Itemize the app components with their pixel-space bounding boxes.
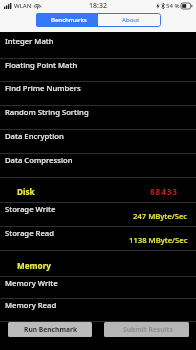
staticText: Random String Sorting [5,107,89,117]
staticText: Memory [17,260,52,271]
staticText: Storage Read [5,228,54,238]
staticText: WLAN [14,2,32,10]
button[interactable]: Storage Write [0,203,196,227]
staticText: 54 % [166,2,180,10]
button[interactable]: Data Encryption [0,130,196,154]
button[interactable]: Memory Read [0,299,196,322]
button[interactable]: Data Compression [0,154,196,178]
button[interactable]: Find Prime Numbers [0,82,196,106]
staticText: 1138 MByte/Sec [129,235,188,245]
staticText: Benchmarks [51,16,87,24]
staticText: Submit Results [123,325,173,334]
staticText: Memory Read [5,300,57,310]
button[interactable]: Storage Read [0,227,196,251]
staticText: Memory Write [5,278,58,288]
staticText: 247 MByte/Sec [133,211,188,221]
button[interactable]: Memory Write [0,277,196,299]
staticText: Data Encryption [5,131,64,141]
staticText: About [122,16,140,24]
button[interactable]: Memory [0,251,196,277]
staticText: Disk [17,186,35,197]
button[interactable]: Disk [0,178,196,203]
staticText: Floating Point Math [5,60,78,70]
staticText: Storage Write [5,204,56,214]
button[interactable]: Submit Results [104,322,189,337]
button[interactable]: Floating Point Math [0,59,196,82]
staticText: Run Benchmark [24,325,78,334]
button[interactable]: Benchmarks [36,13,98,27]
staticText: Integer Math [5,36,54,46]
staticText: 18:32 [89,1,107,11]
button[interactable]: Random String Sorting [0,106,196,130]
staticText: Data Compression [5,155,73,165]
button[interactable]: Integer Math [0,32,196,59]
button[interactable]: About [98,13,161,27]
button[interactable]: Run Benchmark [8,322,92,337]
staticText: Find Prime Numbers [5,83,81,93]
staticText: 88433 [150,186,178,197]
